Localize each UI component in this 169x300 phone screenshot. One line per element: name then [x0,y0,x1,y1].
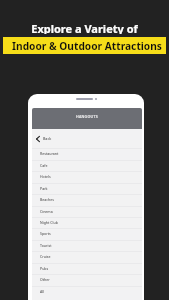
button[interactable]: Tourist [32,240,142,251]
staticText: Night Club [40,220,58,225]
button[interactable]: Sports [32,228,142,239]
staticText: Explore a Variety of [31,21,138,34]
staticText: HANGOUTS [76,114,98,119]
button[interactable]: Pubs [32,263,142,274]
staticText: Back [43,136,52,141]
staticText: Cruise [40,254,51,259]
button[interactable]: Hotels [32,171,142,182]
staticText: Other [40,277,50,282]
staticText: Pubs [40,266,49,271]
staticText: Cinema [40,209,53,214]
button[interactable]: Back [32,129,142,148]
button[interactable]: Cafe [32,160,142,171]
staticText: Cafe [40,163,48,168]
staticText: Beaches [40,197,54,202]
button[interactable]: Cruise [32,251,142,262]
staticText: Sports [40,231,51,236]
button[interactable]: Restaurant [32,148,142,159]
other: Back [35,136,41,142]
button[interactable]: All [32,286,142,297]
staticText: Hotels [40,174,51,179]
button[interactable]: Night Club [32,217,142,228]
staticText: Restaurant [40,151,59,156]
button[interactable]: Other [32,274,142,285]
staticText: All [40,289,45,294]
button[interactable]: Park [32,183,142,194]
staticText: Indoor & Outdoor Attractions [12,39,162,53]
button[interactable]: Cinema [32,206,142,217]
staticText: Tourist [40,243,52,248]
button[interactable]: Beaches [32,194,142,205]
staticText: Park [40,186,48,191]
